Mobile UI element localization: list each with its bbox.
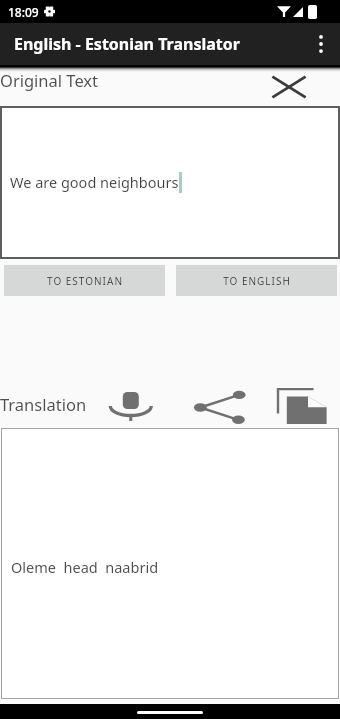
- staticText: We are good neighbours: [10, 172, 179, 192]
- button[interactable]: More options: [308, 27, 334, 61]
- staticText: TO ENGLISH: [223, 274, 291, 288]
- button[interactable]: Speak translation: [108, 388, 152, 426]
- button[interactable]: We are good neighbours: [0, 106, 340, 259]
- button[interactable]: Clear text: [268, 70, 310, 104]
- staticText: Oleme head naabrid: [11, 557, 159, 577]
- button[interactable]: TO ENGLISH: [176, 265, 337, 296]
- staticText: Original Text: [0, 69, 99, 91]
- staticText: Translation: [0, 393, 87, 415]
- button[interactable]: TO ESTONIAN: [4, 265, 165, 296]
- button[interactable]: Oleme head naabrid: [1, 428, 339, 699]
- staticText: TO ESTONIAN: [47, 274, 123, 288]
- button[interactable]: Share: [192, 390, 246, 430]
- button[interactable]: Copy translation: [274, 386, 332, 428]
- staticText: 18:09: [8, 4, 39, 20]
- staticText: English - Estonian Translator: [14, 33, 240, 55]
